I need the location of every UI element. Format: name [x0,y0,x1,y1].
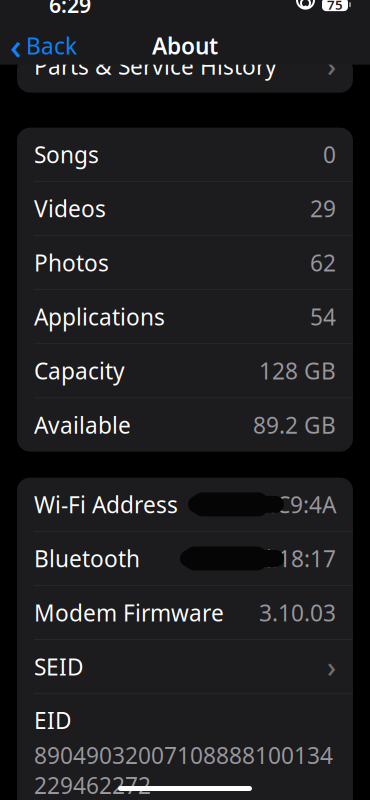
staticText: › [327,47,336,84]
staticText: Photos [34,247,109,278]
staticText: Available [34,410,131,440]
staticText: 54 [310,302,336,332]
staticText: 89.2 GB [253,410,336,440]
staticText: 29 [310,193,336,223]
staticText: 0 [323,139,336,169]
button[interactable]: Photos [17,236,353,289]
staticText: Videos [34,193,106,223]
staticText: 89049032007108888100134229462272 [34,740,333,800]
staticText: i:18:17 [266,543,336,573]
button[interactable]: EID [17,694,353,800]
button[interactable]: Bluetooth [17,532,353,585]
button[interactable]: Songs [17,128,353,181]
button[interactable]: Available [17,398,353,452]
button[interactable]: Modem Firmware [17,586,353,639]
staticText: 62 [310,247,336,278]
staticText: › [327,648,336,685]
staticText: Capacity [34,356,125,386]
staticText: About [152,31,218,61]
button[interactable]: Wi-Fi Address [17,478,353,531]
staticText: Back [26,31,77,61]
staticText: SEID [34,652,84,682]
staticText: Bluetooth [34,543,140,573]
staticText: EID [34,705,72,735]
staticText: 75 [327,0,343,13]
staticText: Songs [34,139,99,169]
staticText: Parts & Service History [34,51,277,81]
staticText: Modem Firmware [34,597,224,628]
button[interactable]: Capacity [17,344,353,397]
button[interactable]: Videos [17,182,353,235]
button[interactable]: Parts & Service History [17,39,353,93]
button[interactable]: ‹ [0,26,87,66]
staticText: 6:29 [49,0,91,19]
staticText: Wi-Fi Address [34,489,178,519]
staticText: 3.10.03 [259,597,336,628]
staticText: 128 GB [259,356,336,386]
staticText: Applications [34,302,165,332]
button[interactable]: SEID [17,640,353,693]
button[interactable]: Applications [17,290,353,343]
staticText: 00:C9:4A [244,489,336,519]
staticText: ‹ [10,22,22,69]
